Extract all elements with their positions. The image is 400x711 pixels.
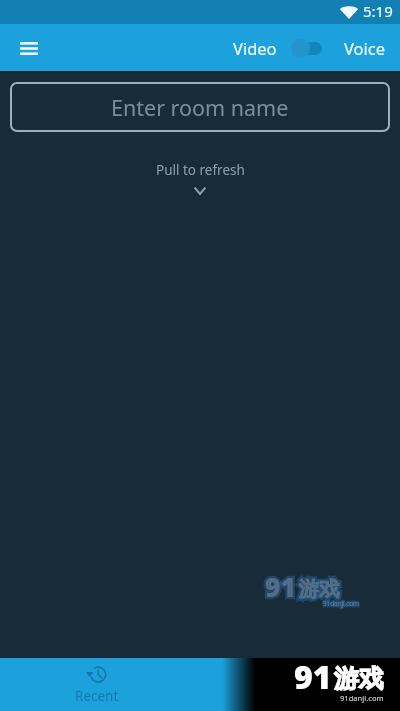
staticText: 5:19 [363,1,393,21]
staticText: Voice [344,37,386,59]
button[interactable]: Menu [11,30,47,66]
button[interactable]: Switch between Video and Voice [291,38,322,58]
staticText: Pull to refresh [156,161,245,179]
staticText: Recent [75,687,119,705]
staticText: Video [233,37,277,59]
staticText: Enter room name [111,93,289,122]
button[interactable]: Enter room name [10,82,390,132]
button[interactable]: Recent [0,658,193,711]
